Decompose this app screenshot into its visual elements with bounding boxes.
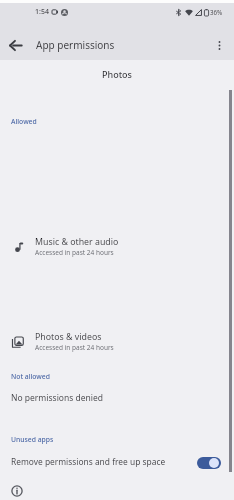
staticText: Accessed in past 24 hours xyxy=(35,343,114,352)
button[interactable]: Music & other audio xyxy=(0,232,234,260)
staticText: Allowed xyxy=(11,117,37,126)
button[interactable]: Back xyxy=(0,30,30,60)
staticText: No permissions denied xyxy=(11,392,103,404)
button[interactable]: Remove permissions if app isn't used, to… xyxy=(197,457,221,469)
staticText: Unused apps xyxy=(11,435,54,444)
staticText: Remove permissions and free up space xyxy=(11,456,166,467)
staticText: Photos & videos xyxy=(35,331,102,343)
staticText: Music & other audio xyxy=(35,236,119,248)
button[interactable]: Info xyxy=(6,480,28,500)
button[interactable]: Remove permissions and free up space xyxy=(0,450,234,472)
staticText: Not allowed xyxy=(11,372,50,381)
staticText: 1:54 xyxy=(35,7,49,17)
button[interactable]: Photos & videos xyxy=(0,327,234,355)
button[interactable]: More options xyxy=(205,31,233,59)
staticText: App permissions xyxy=(36,38,115,52)
staticText: Accessed in past 24 hours xyxy=(35,248,114,257)
staticText: 36% xyxy=(210,8,223,16)
staticText: Photos xyxy=(0,68,234,80)
